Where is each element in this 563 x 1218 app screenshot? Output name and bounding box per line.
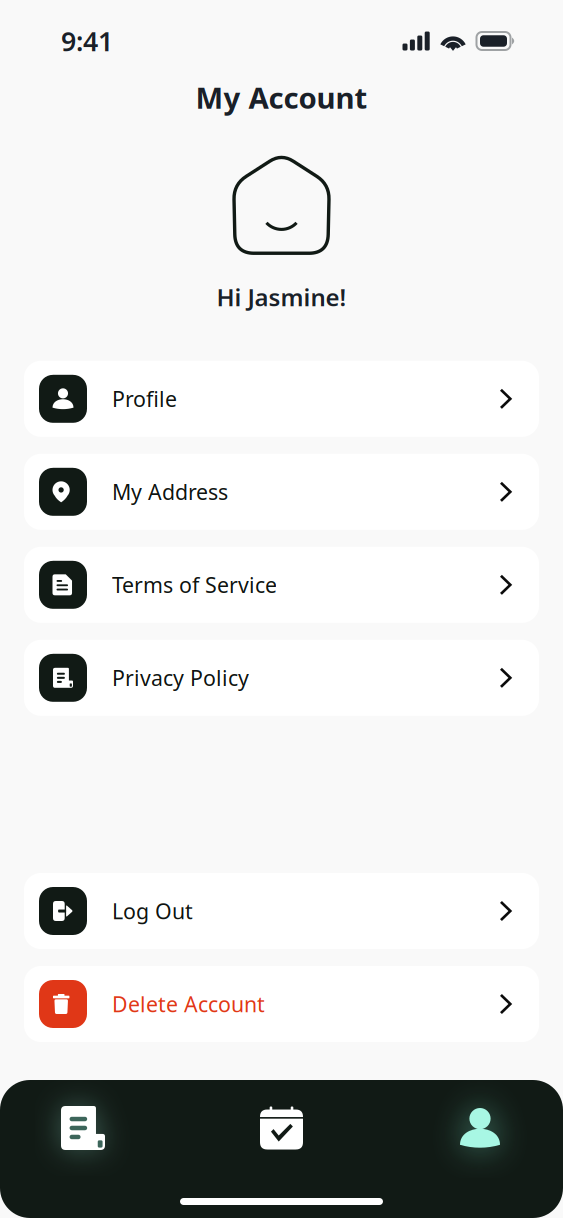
staticText: My Address <box>112 478 228 506</box>
staticText: Log Out <box>112 897 193 925</box>
staticText: My Account <box>195 78 367 117</box>
staticText: Delete Account <box>112 990 265 1018</box>
staticText: Profile <box>112 385 177 413</box>
button[interactable]: Account <box>445 1101 515 1155</box>
button[interactable]: My Address <box>24 454 539 530</box>
button[interactable]: Log Out <box>24 873 539 949</box>
button[interactable]: Privacy Policy <box>24 640 539 716</box>
staticText: Privacy Policy <box>112 664 249 692</box>
button[interactable]: Profile <box>24 361 539 437</box>
staticText: Terms of Service <box>112 571 277 599</box>
button[interactable]: Terms of Service <box>24 547 539 623</box>
button[interactable]: Delete Account <box>24 966 539 1042</box>
button[interactable]: Orders <box>48 1101 118 1155</box>
button[interactable]: Schedule <box>246 1101 316 1155</box>
staticText: Hi Jasmine! <box>216 281 346 313</box>
staticText: 9:41 <box>61 23 113 59</box>
